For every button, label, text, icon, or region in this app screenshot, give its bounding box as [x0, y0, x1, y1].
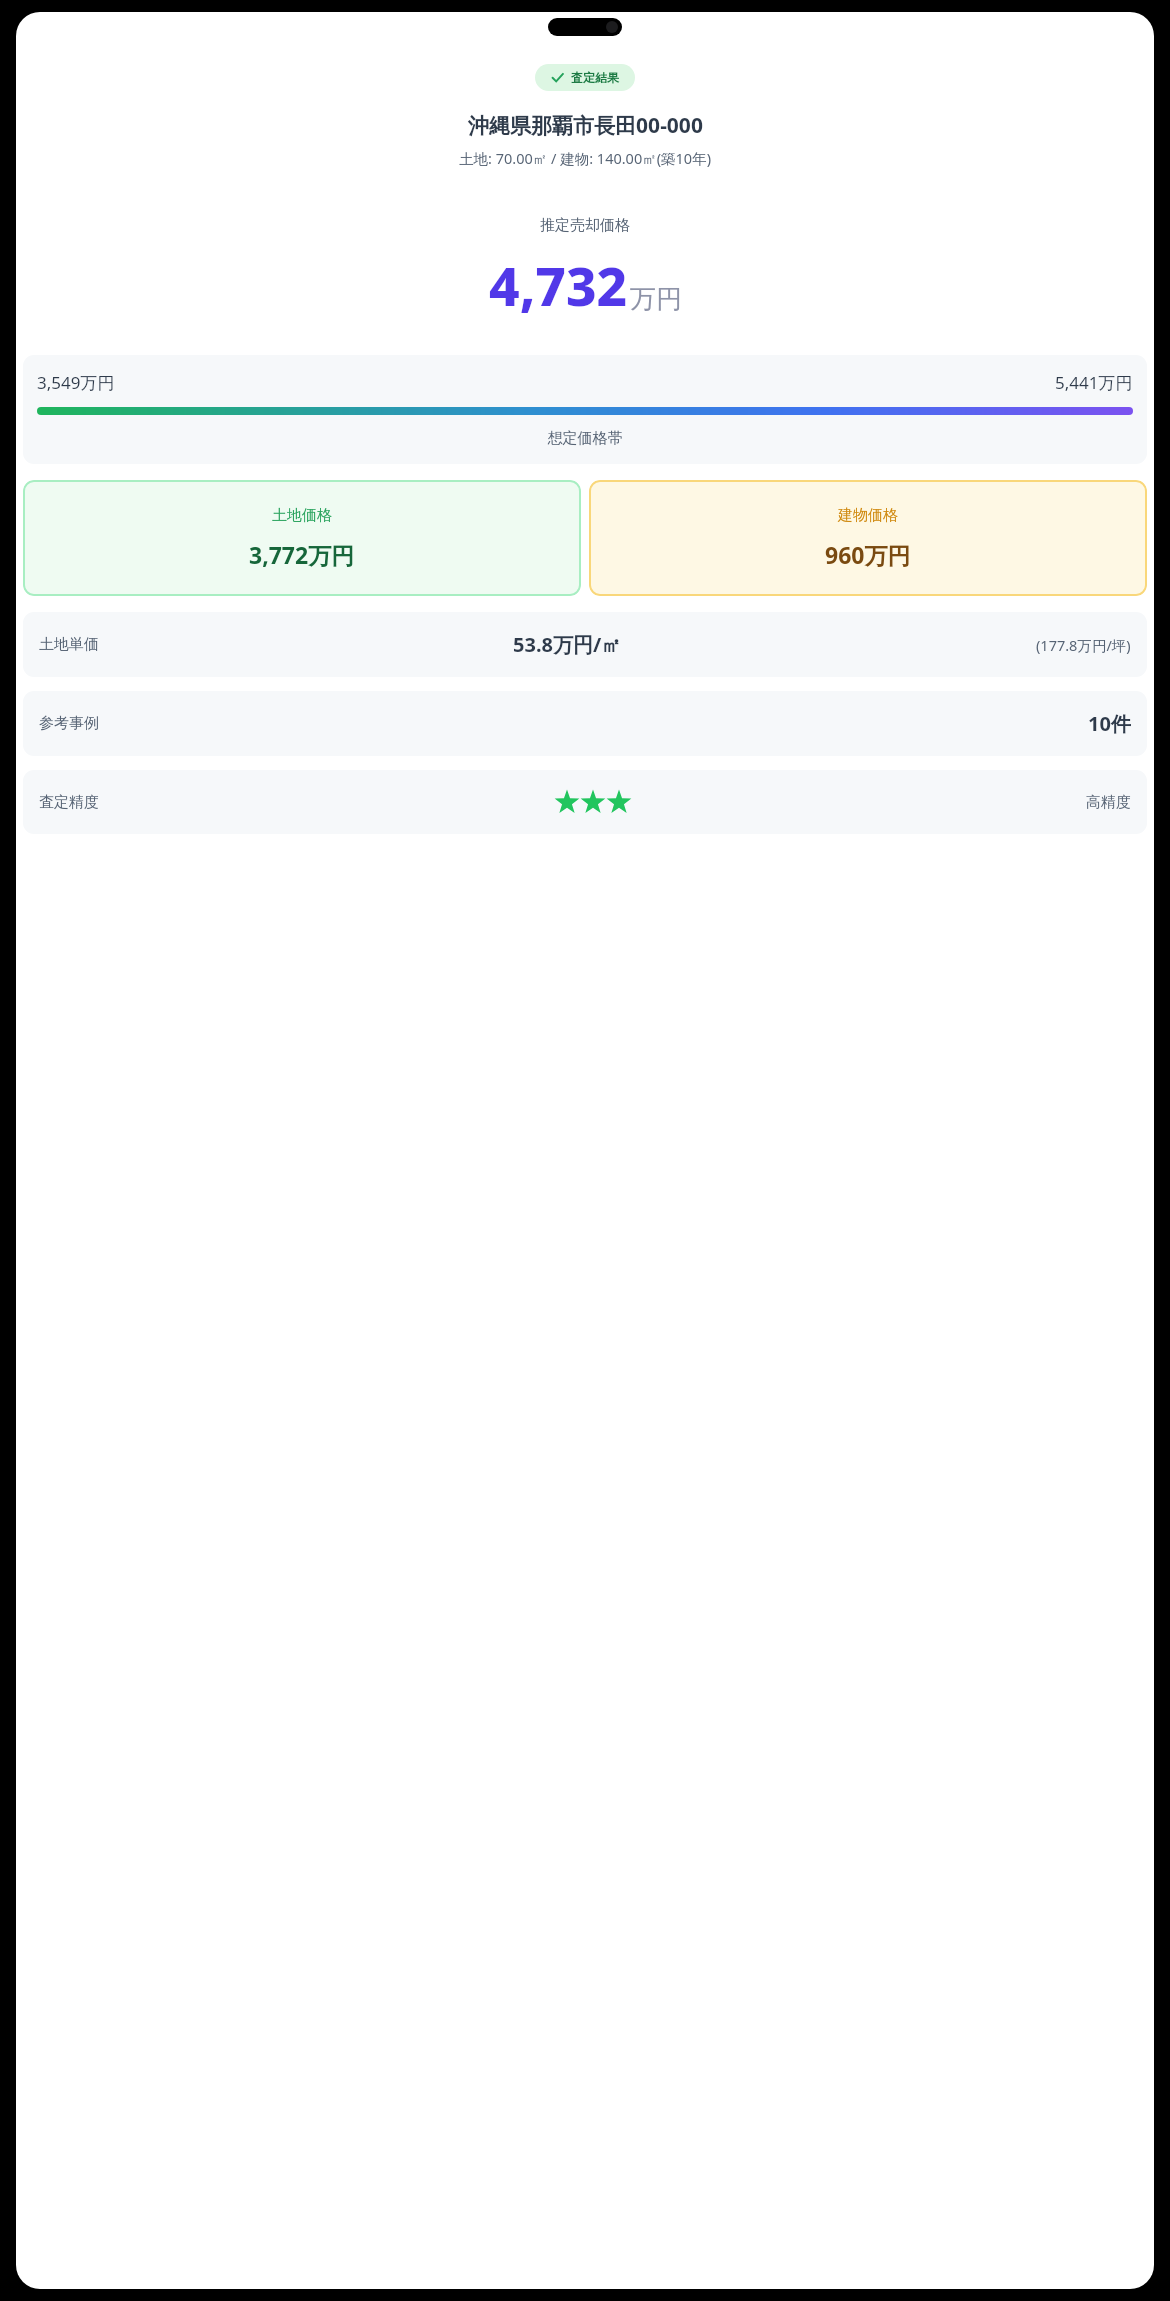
button[interactable]: 3,549万円: [23, 355, 1147, 464]
staticText: 査定精度: [39, 793, 99, 812]
button[interactable]: 参考事例: [23, 691, 1147, 756]
staticText: 建物価格: [838, 506, 898, 525]
staticText: 10件: [1088, 710, 1131, 737]
staticText: 推定売却価格: [540, 216, 630, 235]
staticText: 想定価格帯: [37, 429, 1133, 448]
staticText: 高精度: [1086, 793, 1131, 812]
staticText: 5,441万円: [1055, 371, 1133, 394]
other: Star: [580, 789, 606, 815]
staticText: 参考事例: [39, 714, 99, 733]
staticText: 3,549万円: [37, 371, 115, 394]
button[interactable]: 査定結果: [535, 64, 635, 91]
other: Star: [606, 789, 632, 815]
staticText: 53.8万円/㎡: [513, 631, 622, 658]
staticText: 土地: 70.00㎡ / 建物: 140.00㎡(築10年): [459, 148, 711, 168]
button[interactable]: 土地価格: [23, 480, 581, 596]
staticText: 3,772万円: [249, 539, 355, 570]
staticText: 4,732: [489, 249, 628, 321]
staticText: 査定結果: [571, 70, 619, 85]
button[interactable]: 土地単価: [23, 612, 1147, 677]
staticText: 土地価格: [272, 506, 332, 525]
button[interactable]: 査定精度: [23, 770, 1147, 834]
staticText: (177.8万円/坪): [1036, 635, 1131, 655]
staticText: 沖縄県那覇市長田00-000: [468, 111, 703, 140]
staticText: 960万円: [825, 539, 911, 570]
staticText: 土地単価: [39, 635, 99, 654]
other: Star: [554, 789, 580, 815]
button[interactable]: 建物価格: [589, 480, 1147, 596]
staticText: 万円: [630, 283, 682, 316]
